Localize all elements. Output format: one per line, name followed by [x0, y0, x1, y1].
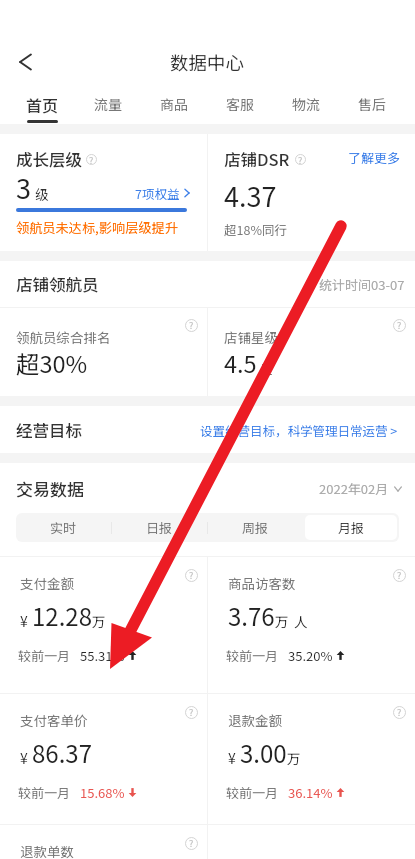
staticText: 支付客单价: [20, 710, 88, 730]
button[interactable]: 2022年02月: [319, 479, 403, 498]
staticText: ?: [189, 706, 194, 719]
staticText: 商品: [160, 94, 188, 114]
staticText: 实时: [50, 518, 77, 537]
staticText: 客服: [226, 94, 254, 114]
button[interactable]: ?: [208, 694, 415, 824]
button[interactable]: ?: [0, 694, 207, 824]
staticText: 3.00: [240, 735, 287, 770]
button[interactable]: ?: [208, 557, 415, 693]
button[interactable]: 物流: [273, 88, 339, 124]
staticText: 星: [260, 359, 273, 377]
staticText: 设置经营目标，科学管理日常运营 >: [200, 421, 398, 439]
staticText: 店铺领航员: [16, 272, 99, 296]
staticText: ?: [397, 319, 402, 332]
staticText: ?: [397, 569, 402, 582]
button[interactable]: ?: [0, 308, 207, 396]
staticText: 支付金额: [20, 573, 74, 593]
staticText: 3.76: [228, 598, 275, 633]
staticText: 领航员综合排名: [16, 327, 111, 347]
staticText: 商品访客数: [228, 573, 296, 593]
staticText: 统计时间03-07: [319, 275, 405, 294]
staticText: 交易数据: [16, 476, 84, 501]
staticText: 2022年02月: [319, 479, 389, 498]
staticText: 较前一月: [18, 646, 71, 665]
staticText: ?: [189, 837, 194, 850]
staticText: ?: [397, 706, 402, 719]
staticText: 首页: [26, 93, 59, 116]
button[interactable]: 成长层级: [0, 134, 207, 251]
button[interactable]: ?: [0, 557, 207, 693]
staticText: 7项权益: [135, 184, 180, 202]
button[interactable]: 经营目标: [0, 406, 415, 453]
staticText: 较前一月: [226, 646, 279, 665]
staticText: 退款单数: [20, 841, 74, 859]
staticText: ?: [89, 154, 94, 165]
button[interactable]: 周报: [209, 515, 301, 540]
staticText: 经营目标: [16, 418, 82, 442]
staticText: ?: [189, 569, 194, 582]
staticText: 万: [275, 611, 289, 631]
staticText: 4.5: [224, 346, 257, 380]
staticText: 36.14%: [288, 783, 333, 802]
staticText: ¥: [228, 748, 236, 768]
staticText: 成长层级: [16, 147, 82, 171]
staticText: 店铺星级: [224, 327, 278, 347]
staticText: 物流: [292, 94, 320, 114]
button[interactable]: ?: [208, 308, 415, 396]
staticText: 人: [294, 611, 308, 631]
staticText: 4.37: [224, 176, 277, 215]
staticText: 了解更多: [348, 148, 401, 167]
staticText: 级: [35, 184, 49, 204]
staticText: 周报: [242, 518, 269, 537]
staticText: 万: [287, 748, 301, 768]
staticText: 店铺DSR: [224, 147, 290, 171]
staticText: 15.68%: [80, 783, 125, 802]
staticText: 55.31%: [80, 646, 125, 665]
staticText: 较前一月: [18, 783, 71, 802]
staticText: ¥: [20, 611, 28, 631]
staticText: 较前一月: [226, 783, 279, 802]
staticText: 领航员未达标,影响层级提升: [16, 218, 178, 237]
staticText: ¥: [20, 748, 28, 768]
staticText: 退款金额: [228, 710, 282, 730]
staticText: 流量: [94, 94, 122, 114]
staticText: 超18%同行: [224, 220, 287, 238]
staticText: 日报: [146, 518, 173, 537]
staticText: ?: [189, 319, 194, 332]
button[interactable]: 流量: [75, 88, 141, 124]
staticText: 数据中心: [170, 49, 245, 76]
button[interactable]: ?: [0, 825, 207, 859]
staticText: 超30%: [16, 346, 88, 380]
button[interactable]: 日报: [113, 515, 205, 540]
staticText: 12.28: [32, 598, 92, 633]
button[interactable]: 客服: [207, 88, 273, 124]
staticText: 售后: [358, 94, 386, 114]
staticText: 万: [92, 611, 106, 631]
button[interactable]: 售后: [339, 88, 405, 124]
button[interactable]: 月报: [305, 515, 397, 540]
staticText: 3: [16, 168, 31, 207]
staticText: ?: [298, 154, 303, 165]
button[interactable]: Back: [0, 38, 48, 86]
staticText: 86.37: [32, 735, 92, 770]
button[interactable]: 实时: [18, 515, 109, 540]
button[interactable]: 商品: [141, 88, 207, 124]
button[interactable]: 首页: [10, 88, 75, 124]
staticText: 月报: [338, 518, 365, 537]
button[interactable]: 店铺DSR: [208, 134, 415, 251]
staticText: 35.20%: [288, 646, 333, 665]
